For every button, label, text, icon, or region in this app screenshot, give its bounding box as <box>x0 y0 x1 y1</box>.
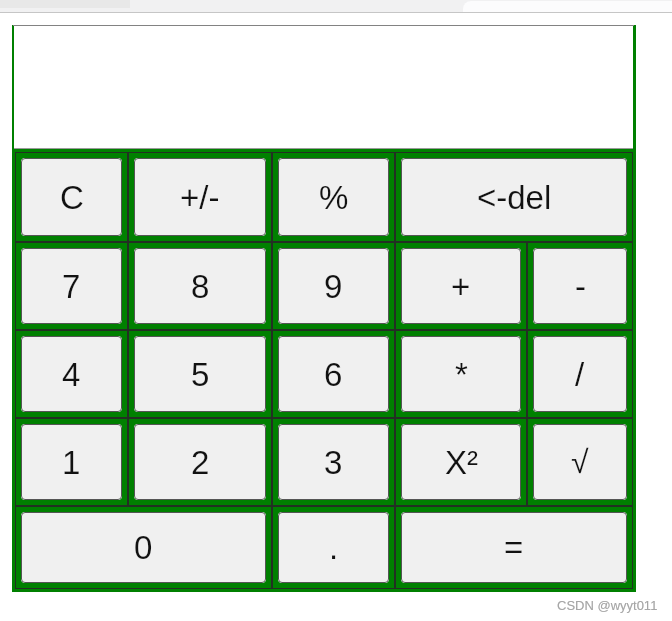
staticText: % <box>319 179 349 216</box>
button[interactable]: 5 <box>128 330 272 418</box>
staticText: CSDN @wyyt011 <box>557 598 658 613</box>
button[interactable]: X² <box>395 418 527 506</box>
staticText: * <box>455 356 468 393</box>
button[interactable]: 3 <box>272 418 395 506</box>
staticText: = <box>504 529 524 566</box>
button[interactable]: √ <box>527 418 633 506</box>
staticText: - <box>575 268 586 305</box>
staticText: <-del <box>477 179 552 216</box>
staticText: 9 <box>324 268 343 305</box>
staticText: 6 <box>324 356 343 393</box>
staticText: 2 <box>191 444 210 481</box>
button[interactable]: - <box>527 242 633 330</box>
button[interactable]: 1 <box>15 418 128 506</box>
button[interactable]: 4 <box>15 330 128 418</box>
staticText: +/- <box>180 179 220 216</box>
staticText: 5 <box>191 356 210 393</box>
button[interactable]: 7 <box>15 242 128 330</box>
button[interactable]: + <box>395 242 527 330</box>
button[interactable]: % <box>272 152 395 242</box>
staticText: / <box>575 356 585 393</box>
staticText: 0 <box>134 529 153 566</box>
button[interactable]: / <box>527 330 633 418</box>
staticText: 8 <box>191 268 210 305</box>
staticText: 3 <box>324 444 343 481</box>
button[interactable]: 8 <box>128 242 272 330</box>
button[interactable]: +/- <box>128 152 272 242</box>
button[interactable]: <-del <box>395 152 633 242</box>
staticText: X² <box>445 444 478 481</box>
button[interactable]: 0 <box>15 506 272 589</box>
button[interactable]: = <box>395 506 633 589</box>
button[interactable]: 9 <box>272 242 395 330</box>
button[interactable]: * <box>395 330 527 418</box>
staticText: 1 <box>62 444 81 481</box>
staticText: + <box>451 268 471 305</box>
button[interactable]: 6 <box>272 330 395 418</box>
staticText: 4 <box>62 356 81 393</box>
staticText: . <box>329 529 339 566</box>
staticText: 7 <box>62 268 81 305</box>
staticText: √ <box>571 444 589 480</box>
button[interactable]: 2 <box>128 418 272 506</box>
button[interactable]: C <box>15 152 128 242</box>
staticText: C <box>60 179 84 216</box>
button[interactable]: . <box>272 506 395 589</box>
